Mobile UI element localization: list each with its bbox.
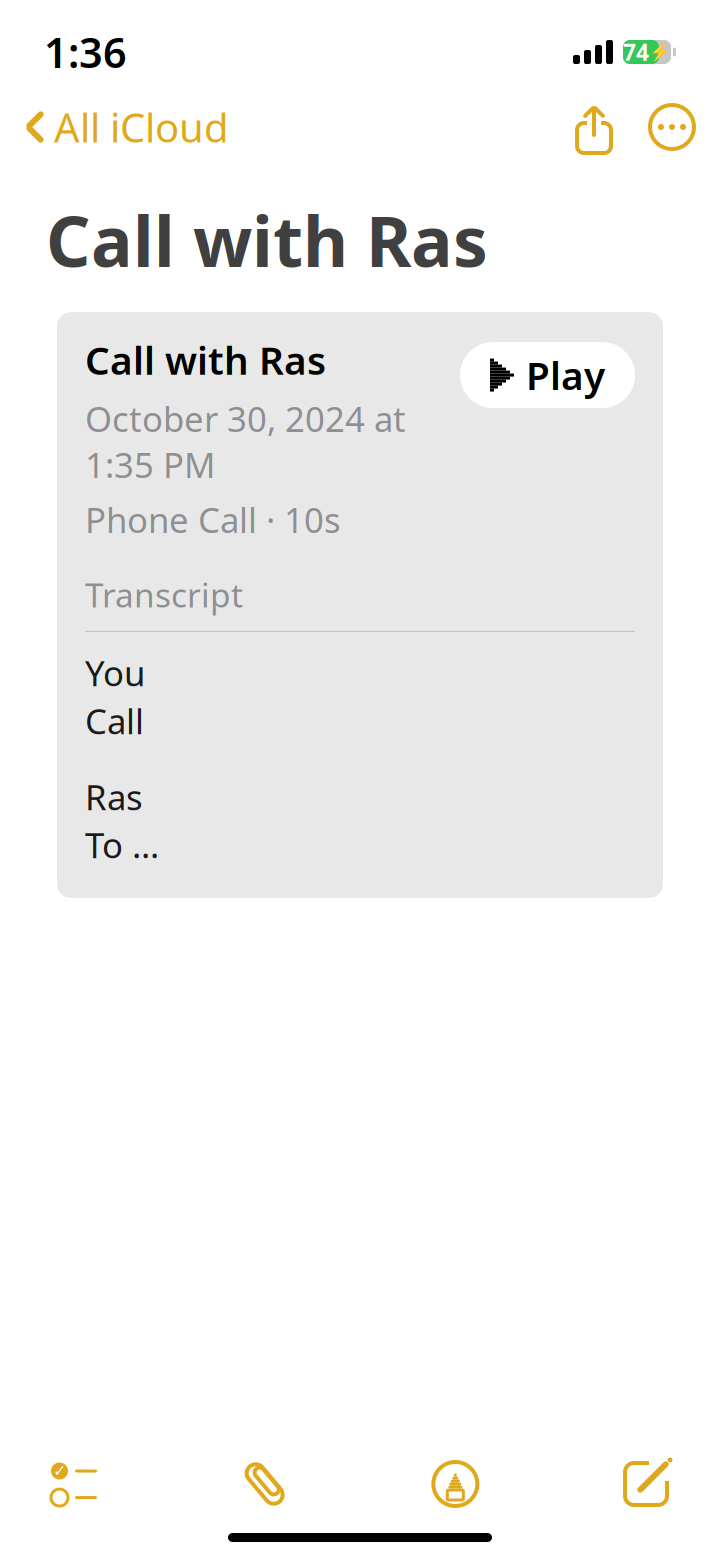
button[interactable]: All iCloud bbox=[18, 92, 229, 161]
staticText: To ... bbox=[85, 822, 159, 868]
button[interactable]: Attach bbox=[225, 1446, 305, 1522]
staticText: ✓ bbox=[53, 1462, 66, 1480]
staticText: Play bbox=[526, 349, 605, 401]
button[interactable]: New Note bbox=[606, 1446, 686, 1522]
staticText: Call with Ras bbox=[85, 334, 326, 385]
button[interactable]: Markup bbox=[415, 1446, 495, 1522]
staticText: All iCloud bbox=[54, 100, 229, 153]
button[interactable]: Checklist bbox=[34, 1446, 114, 1522]
button[interactable]: Share bbox=[564, 97, 624, 157]
staticText: Call with Ras bbox=[46, 194, 488, 286]
staticText: Phone Call · 10s bbox=[85, 496, 341, 542]
staticText: ⚡ bbox=[649, 42, 671, 62]
staticText: 74 bbox=[623, 37, 649, 67]
staticText: You bbox=[85, 650, 145, 696]
staticText: Ras bbox=[85, 774, 143, 820]
staticText: Transcript bbox=[85, 572, 243, 617]
staticText: 1:36 bbox=[44, 25, 127, 79]
button[interactable]: Play bbox=[460, 342, 635, 408]
staticText: October 30, 2024 at 1:35 PM bbox=[85, 395, 406, 487]
staticText: Call bbox=[85, 698, 144, 744]
button[interactable]: More bbox=[642, 97, 702, 157]
